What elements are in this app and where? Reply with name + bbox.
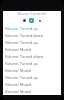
staticText: Volume: Turned up [5, 75, 38, 80]
staticText: Volume: Muted [5, 89, 32, 94]
button[interactable]: Volume: Turned down [3, 32, 61, 39]
staticText: Volume: Turned up [5, 26, 38, 31]
staticText: Volume: Turned down [5, 33, 43, 38]
staticText: Volume: Turned up [5, 40, 38, 45]
staticText: Volume: Muted [5, 68, 32, 73]
button[interactable]: Volume: Turned down [3, 53, 61, 60]
button[interactable]: Volume: Muted [3, 67, 61, 74]
button[interactable]: Volume: Turned up [3, 39, 61, 46]
staticText: Music Controls [17, 11, 47, 17]
button[interactable]: Volume: Turned up [3, 25, 61, 32]
button[interactable]: Volume: Muted [3, 46, 61, 53]
staticText: Volume: Turned down [5, 54, 43, 59]
staticText: Volume: Muted [5, 47, 32, 52]
button[interactable]: Volume: Turned up [3, 60, 61, 67]
staticText: Volume: Muted [5, 82, 32, 87]
button[interactable]: Play [29, 18, 34, 23]
button[interactable]: Volume: Muted [3, 81, 61, 88]
staticText: Volume: Turned up [5, 61, 38, 66]
button[interactable]: Volume: Muted [3, 88, 61, 95]
button[interactable]: Volume: Turned up [3, 74, 61, 81]
button[interactable]: Previous track [23, 19, 26, 22]
